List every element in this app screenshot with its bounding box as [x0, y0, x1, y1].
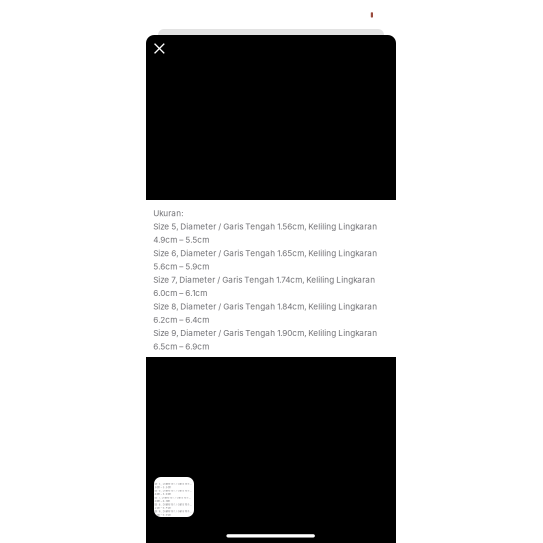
button[interactable]: Close [145, 34, 173, 62]
staticText: Size 5, Diameter / Garis Tengah 1.56cm, … [153, 222, 377, 231]
staticText: 6.0cm – 6.1cm [152, 499, 170, 502]
staticText: 6.5cm – 6.9cm [152, 513, 171, 516]
staticText: Size 9, Diameter / Garis Tengah 1.90cm, … [152, 510, 192, 513]
staticText: Size 8, Diameter / Garis Tengah 1.84cm, … [153, 301, 377, 311]
staticText: Size 7, Diameter / Garis Tengah 1.74cm, … [153, 275, 375, 285]
staticText: Size 7, Diameter / Garis Tengah 1.74cm, … [152, 496, 192, 499]
staticText: 5.6cm – 5.9cm [152, 492, 171, 496]
staticText: 4.9cm – 5.5cm [152, 486, 171, 489]
staticText: Size 8, Diameter / Garis Tengah 1.84cm, … [152, 503, 192, 506]
staticText: 4.9cm – 5.5cm [153, 235, 209, 245]
staticText: Size 5, Diameter / Garis Tengah 1.56cm, … [152, 482, 192, 485]
staticText: Size 6, Diameter / Garis Tengah 1.65cm, … [152, 489, 192, 492]
staticText: 5.6cm – 5.9cm [153, 262, 209, 271]
staticText: Size 9, Diameter / Garis Tengah 1.90cm, … [153, 328, 377, 338]
staticText: 6.2cm – 6.4cm [153, 315, 209, 325]
staticText: Ukuran: [153, 208, 183, 218]
button[interactable]: Size chart page 1 [154, 477, 194, 517]
staticText: 6.2cm – 6.4cm [152, 506, 171, 509]
staticText: Size 6, Diameter / Garis Tengah 1.65cm, … [153, 248, 377, 258]
staticText: 6.5cm – 6.9cm [153, 341, 209, 351]
staticText: 6.0cm – 6.1cm [153, 288, 207, 298]
